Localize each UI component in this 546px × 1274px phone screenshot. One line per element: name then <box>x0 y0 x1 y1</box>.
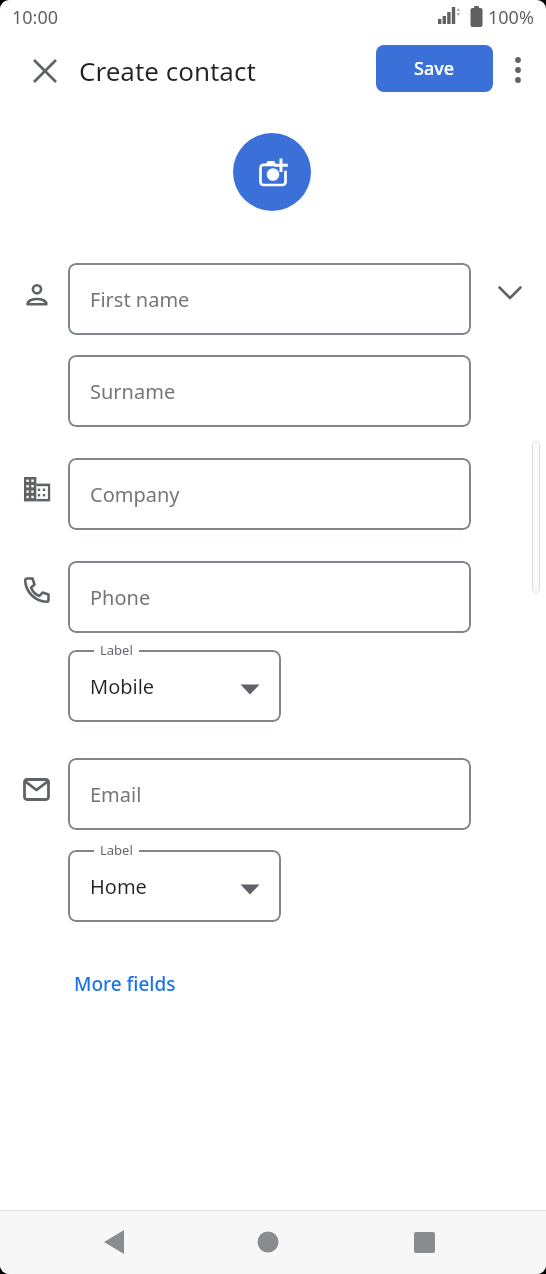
button[interactable]: Surname <box>68 355 471 427</box>
staticText: First name <box>90 286 190 313</box>
staticText: Label <box>100 841 133 859</box>
staticText: Mobile <box>90 673 155 700</box>
button[interactable]: Company <box>68 458 471 530</box>
staticText: Company <box>90 481 180 508</box>
button[interactable] <box>92 1220 136 1264</box>
staticText: Save <box>414 56 455 81</box>
button[interactable]: Phone <box>68 561 471 633</box>
button[interactable]: More fields <box>74 971 176 997</box>
staticText: 100% <box>488 5 534 30</box>
button[interactable]: Save <box>376 45 493 92</box>
button[interactable]: Email <box>68 758 471 830</box>
staticText: Create contact <box>79 53 256 88</box>
button[interactable] <box>246 1220 290 1264</box>
button[interactable] <box>487 272 533 314</box>
staticText: Label <box>100 641 133 659</box>
button[interactable] <box>24 50 66 92</box>
button[interactable]: First name <box>68 263 471 335</box>
button[interactable] <box>233 133 311 211</box>
button[interactable] <box>502 50 534 90</box>
staticText: Surname <box>90 378 176 405</box>
staticText: Home <box>90 873 147 900</box>
staticText: Email <box>90 781 142 808</box>
button[interactable] <box>402 1220 446 1264</box>
button[interactable]: Home <box>68 850 281 922</box>
button[interactable]: Mobile <box>68 650 281 722</box>
staticText: 10:00 <box>12 5 59 30</box>
staticText: Phone <box>90 584 151 611</box>
